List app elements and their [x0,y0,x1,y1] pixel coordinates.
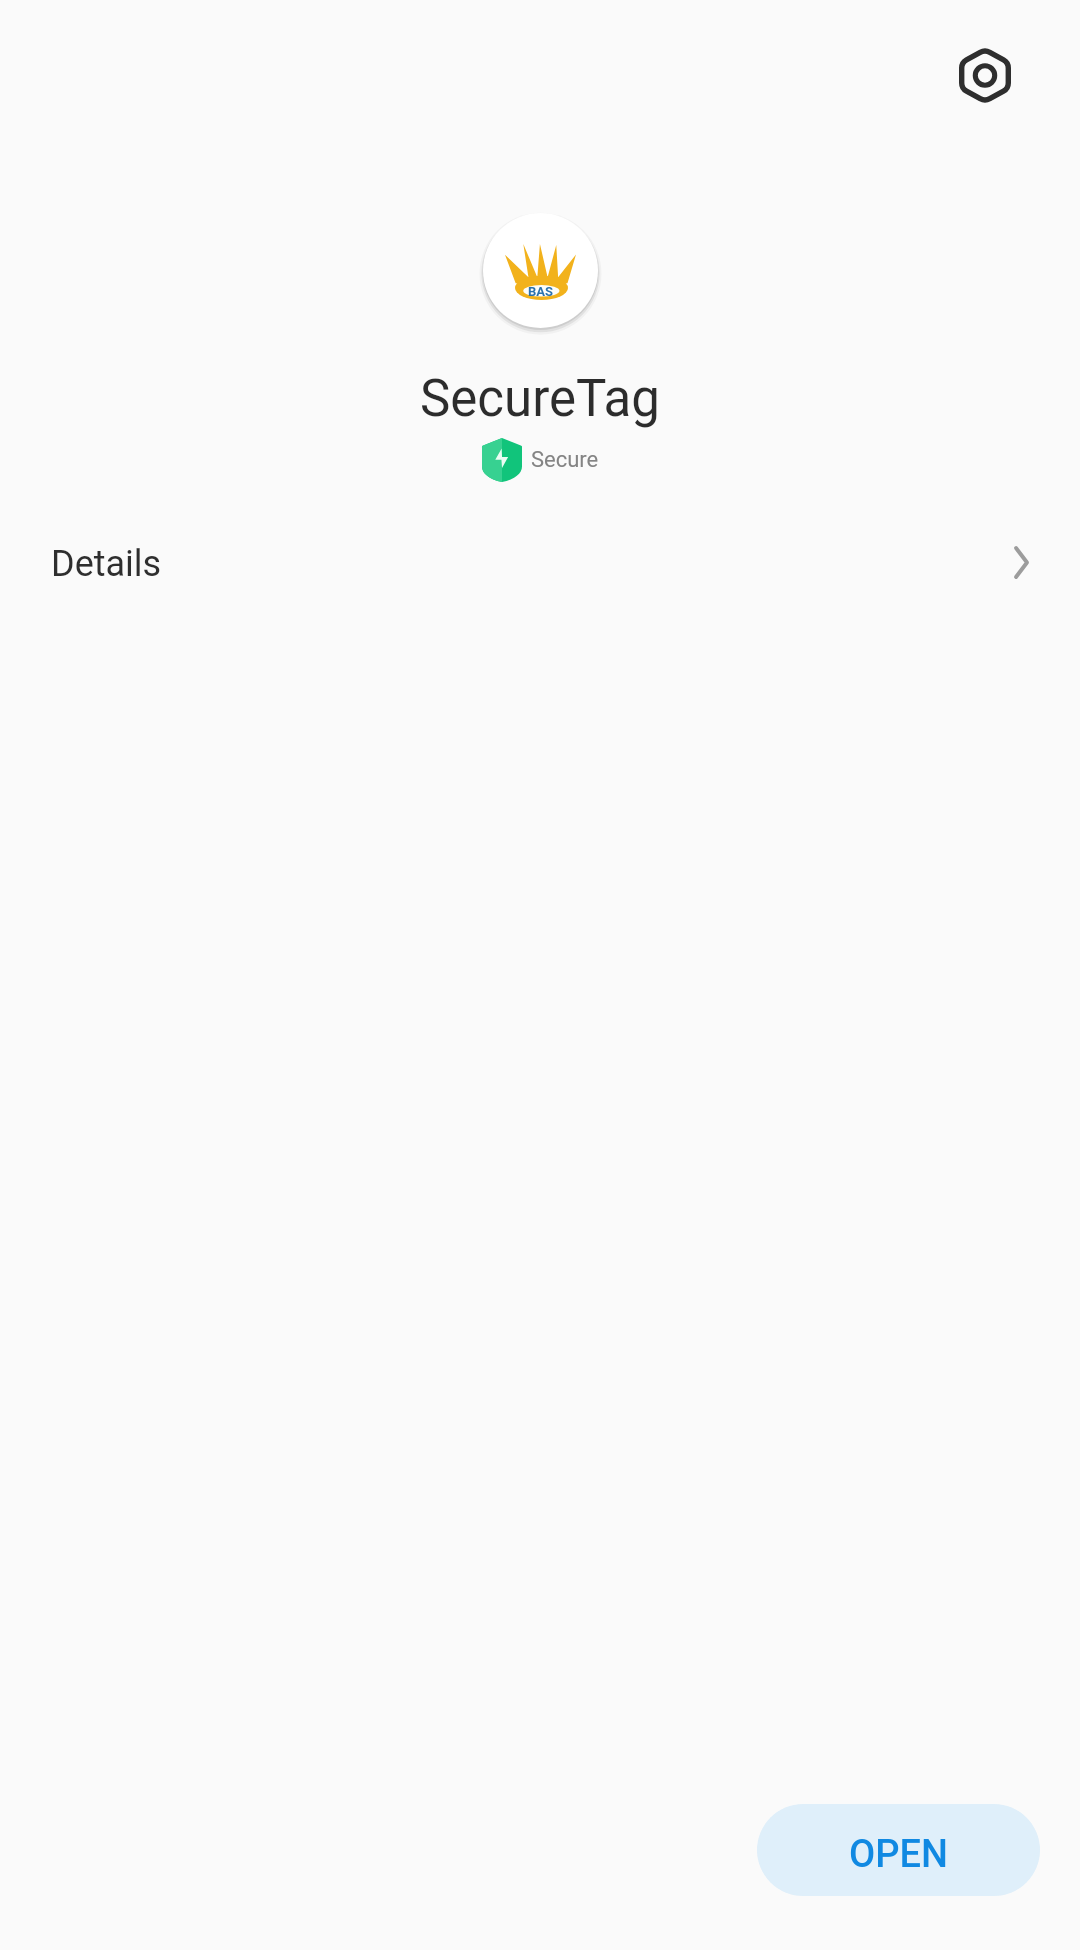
staticText: SecureTag [420,369,660,429]
staticText: BAS [528,284,554,299]
staticText: Secure [531,447,599,473]
button[interactable]: OPEN [757,1804,1040,1896]
staticText: Details [51,543,162,585]
staticText: OPEN [849,1832,949,1877]
button[interactable]: Settings [937,27,1033,123]
button[interactable]: Details [0,514,1080,614]
